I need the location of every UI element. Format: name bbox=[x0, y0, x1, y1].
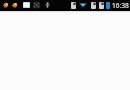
button[interactable]: Notification bbox=[45, 2, 50, 8]
button[interactable]: 16:38 bbox=[111, 0, 129, 11]
button[interactable]: Mobile signal SIM 2 bbox=[99, 2, 104, 9]
button[interactable]: Mobile signal SIM 1 bbox=[91, 2, 96, 9]
button[interactable]: Wi-Fi bbox=[79, 2, 87, 8]
staticText: 16:38 bbox=[112, 1, 129, 10]
button[interactable]: Notification bbox=[3, 2, 9, 8]
button[interactable]: Notification bbox=[33, 2, 40, 8]
button[interactable]: Notification bbox=[12, 2, 18, 8]
button[interactable]: Screenshot captured bbox=[23, 2, 30, 8]
button[interactable]: Battery bbox=[106, 2, 110, 9]
button[interactable]: Alarm bbox=[71, 2, 76, 9]
